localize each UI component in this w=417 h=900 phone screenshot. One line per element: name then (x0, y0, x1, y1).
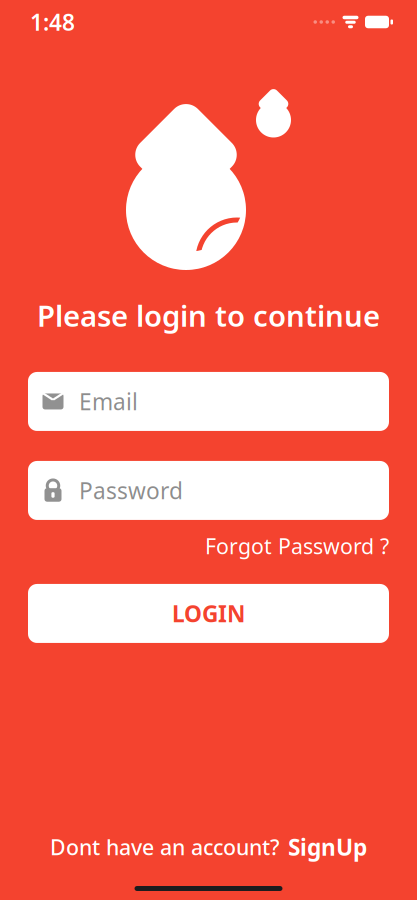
staticText: Please login to continue (37, 296, 380, 335)
button[interactable]: Forgot Password ? (28, 533, 389, 559)
button[interactable]: Password (28, 461, 389, 520)
staticText: Email (79, 386, 138, 416)
button[interactable]: Dont have an account? (50, 832, 367, 862)
button[interactable]: Email (28, 372, 389, 431)
staticText: Dont have an account? (50, 833, 280, 861)
button[interactable]: LOGIN (28, 584, 389, 643)
staticText: 1:48 (30, 7, 75, 37)
staticText: Password (79, 475, 183, 505)
staticText: SignUp (288, 832, 367, 862)
staticText: Forgot Password ? (205, 532, 389, 560)
staticText: LOGIN (172, 598, 245, 628)
